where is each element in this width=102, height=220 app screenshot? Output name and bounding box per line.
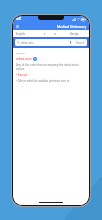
- button[interactable]: Voice search: [68, 40, 73, 45]
- button[interactable]: English: [13, 30, 39, 37]
- staticText: ⇄: [54, 32, 57, 35]
- button[interactable]: Open navigation menu: [15, 24, 20, 29]
- staticText: •: [22, 85, 23, 89]
- staticText: what acts: [21, 41, 68, 45]
- staticText: English: [16, 51, 25, 54]
- staticText: 9:41: [16, 17, 22, 21]
- button[interactable]: Search: [73, 39, 87, 46]
- button[interactable]: Bangla: [61, 30, 87, 37]
- button[interactable]: ⇄: [50, 30, 61, 37]
- staticText: • Bangla: [16, 73, 28, 77]
- button[interactable]: Pronounce: [33, 57, 37, 61]
- staticText: Medical Dictionary: [57, 24, 87, 28]
- staticText: English: [16, 32, 26, 36]
- button[interactable]: ▾: [39, 30, 50, 37]
- staticText: Bangla: [70, 32, 79, 36]
- button[interactable]: Medical Dictionary: [55, 24, 89, 28]
- button[interactable]: what acts: [15, 39, 87, 46]
- staticText: Search: [76, 41, 85, 45]
- staticText: Any of the units that accompany the what…: [16, 63, 86, 71]
- staticText: what acts: [16, 56, 32, 61]
- staticText: • Others which be availabe premises over…: [16, 79, 70, 83]
- staticText: ▾: [44, 32, 46, 35]
